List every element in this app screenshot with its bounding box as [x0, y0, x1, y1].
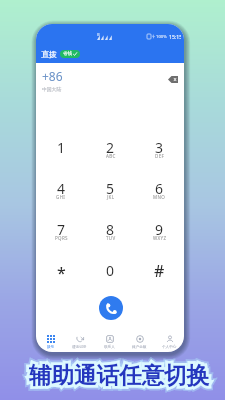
staticText: #	[154, 260, 165, 282]
staticText: 通话记录	[72, 345, 87, 350]
staticText: 3	[155, 138, 164, 157]
staticText: 7	[57, 220, 66, 239]
staticText: 中国大陆	[42, 86, 62, 92]
staticText: 9	[155, 220, 164, 239]
staticText: 6	[155, 179, 164, 198]
staticText: 2	[106, 138, 115, 157]
button[interactable]: 账户余额	[124, 324, 154, 352]
button[interactable]: #	[135, 251, 184, 292]
staticText: ·	[110, 270, 112, 280]
button[interactable]: 8	[86, 210, 135, 251]
staticText: 辅助通话任意切换	[29, 361, 209, 389]
staticText: 4	[57, 179, 66, 198]
staticText: 0	[106, 261, 115, 280]
staticText: 5	[106, 179, 115, 198]
button[interactable]: 7	[36, 210, 86, 251]
button[interactable]: 通话记录	[65, 324, 94, 352]
staticText: +86	[42, 68, 63, 84]
staticText: JKL	[107, 194, 115, 200]
staticText: 账户余额	[132, 345, 147, 350]
button[interactable]: 个人中心	[154, 324, 184, 352]
button[interactable]: 1	[36, 128, 86, 169]
staticText: 100%	[156, 34, 167, 40]
button[interactable]: 省钱	[60, 50, 80, 58]
staticText: 联系人	[104, 345, 115, 350]
staticText: 直拨	[41, 49, 57, 59]
button[interactable]: 9	[135, 210, 184, 251]
button[interactable]: 联系人	[94, 324, 124, 352]
staticText: 辅助通话任意切换	[29, 361, 209, 389]
staticText: 省钱	[63, 51, 72, 57]
staticText: DEF	[155, 153, 165, 159]
button[interactable]: *	[36, 251, 86, 292]
staticText: PQRS	[55, 235, 68, 241]
staticText: 辅助通话任意切换	[29, 361, 209, 389]
button[interactable]: 5	[86, 169, 135, 210]
button[interactable]: 3	[135, 128, 184, 169]
button[interactable]: 0	[86, 251, 135, 292]
staticText: ABC	[106, 153, 116, 159]
staticText: GHI	[56, 194, 66, 200]
staticText: 15:15	[169, 33, 181, 40]
button[interactable]: 4	[36, 169, 86, 210]
staticText: 8	[106, 220, 115, 239]
button[interactable]: Backspace	[165, 73, 180, 85]
staticText: 拨号	[47, 345, 55, 350]
button[interactable]: 拨号	[36, 324, 65, 352]
staticText: TUV	[106, 235, 116, 241]
button[interactable]: Call	[99, 296, 123, 320]
staticText: 1	[57, 138, 66, 157]
button[interactable]: 2	[86, 128, 135, 169]
button[interactable]: 6	[135, 169, 184, 210]
staticText: *	[57, 262, 66, 284]
staticText: 个人中心	[162, 345, 177, 350]
staticText: WXYZ	[153, 235, 167, 241]
staticText: MNO	[153, 194, 166, 200]
